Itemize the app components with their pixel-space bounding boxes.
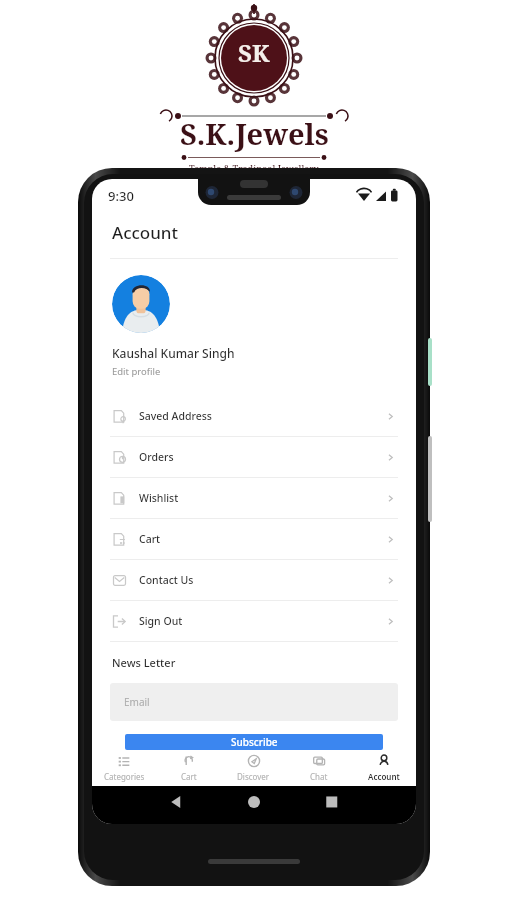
staticText: Temple & Tradinoal Jewellery bbox=[189, 162, 319, 174]
button[interactable] bbox=[112, 275, 170, 333]
staticText: Cart bbox=[181, 771, 197, 782]
staticText: Cart bbox=[139, 532, 161, 546]
staticText: Account bbox=[112, 221, 179, 244]
staticText: Edit profile bbox=[112, 365, 161, 378]
staticText: Kaushal Kumar Singh bbox=[112, 345, 235, 361]
staticText: Categories bbox=[104, 771, 145, 782]
staticText: Subscribe bbox=[231, 735, 278, 749]
staticText: Contact Us bbox=[139, 573, 194, 587]
staticText: Orders bbox=[139, 450, 174, 464]
button[interactable]: Wishlist bbox=[92, 478, 416, 518]
button[interactable]: Contact Us bbox=[92, 560, 416, 600]
button[interactable]: Subscribe bbox=[125, 734, 383, 750]
button[interactable]: Discover bbox=[221, 750, 286, 786]
button[interactable]: Chat bbox=[286, 750, 351, 786]
staticText: Account bbox=[368, 771, 400, 782]
button[interactable]: Categories bbox=[92, 750, 156, 786]
staticText: BENGALURU bbox=[224, 177, 284, 187]
button[interactable]: Account bbox=[351, 750, 416, 786]
button[interactable]: Kaushal Kumar Singh bbox=[92, 343, 255, 380]
button[interactable]: Email bbox=[110, 683, 398, 721]
staticText: Wishlist bbox=[139, 491, 179, 505]
staticText: Sign Out bbox=[139, 614, 183, 628]
staticText: Chat bbox=[310, 771, 328, 782]
button[interactable]: Sign Out bbox=[92, 601, 416, 641]
staticText: S.K.Jewels bbox=[180, 114, 329, 153]
staticText: 9:30 bbox=[108, 187, 134, 205]
button[interactable]: Orders bbox=[92, 437, 416, 477]
button[interactable]: Cart bbox=[92, 519, 416, 559]
staticText: Saved Address bbox=[139, 409, 212, 423]
staticText: Discover bbox=[237, 771, 270, 782]
staticText: News Letter bbox=[112, 655, 176, 670]
staticText: SK bbox=[238, 36, 270, 69]
button[interactable]: Cart bbox=[156, 750, 221, 786]
button[interactable]: Saved Address bbox=[92, 396, 416, 436]
staticText: Email bbox=[124, 695, 150, 709]
